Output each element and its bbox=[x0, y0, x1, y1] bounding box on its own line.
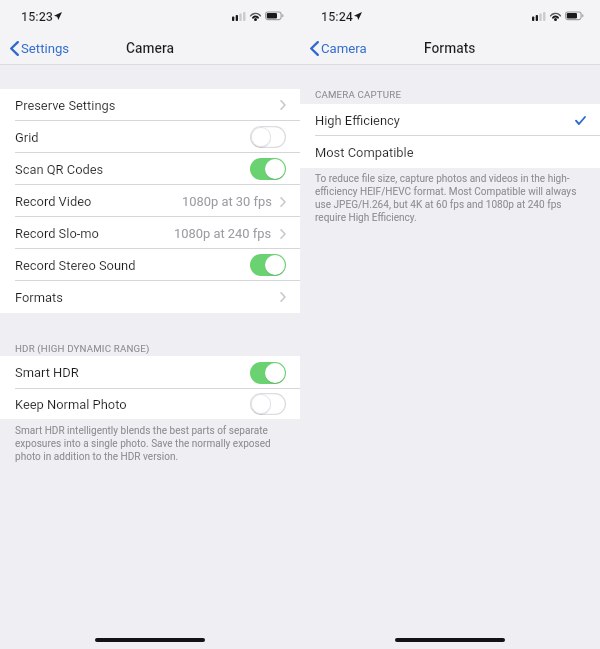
staticText: Preserve Settings bbox=[15, 98, 116, 113]
button[interactable]: High Efficiency bbox=[300, 104, 600, 136]
button[interactable]: Keep Normal Photo bbox=[250, 393, 286, 415]
button[interactable]: Record Stereo Sound bbox=[250, 254, 286, 276]
button[interactable]: Record Stereo Sound bbox=[0, 249, 300, 281]
button[interactable]: Grid bbox=[250, 126, 286, 148]
staticText: Record Stereo Sound bbox=[15, 258, 136, 273]
staticText: HDR (HIGH DYNAMIC RANGE) bbox=[15, 343, 150, 354]
staticText: Grid bbox=[15, 130, 39, 145]
button[interactable]: Smart HDR bbox=[250, 362, 286, 384]
staticText: Formats bbox=[424, 40, 476, 56]
button[interactable]: Formats bbox=[0, 281, 300, 313]
staticText: Keep Normal Photo bbox=[15, 397, 127, 412]
staticText: Record Video bbox=[15, 194, 92, 209]
staticText: Smart HDR intelligently blends the best … bbox=[15, 425, 281, 463]
button[interactable]: Camera bbox=[306, 38, 375, 59]
button[interactable]: Keep Normal Photo bbox=[0, 389, 300, 419]
staticText: Camera bbox=[126, 40, 175, 56]
staticText: Scan QR Codes bbox=[15, 162, 104, 177]
button[interactable]: Record Slo-mo bbox=[0, 217, 300, 249]
staticText: 15:24 bbox=[321, 9, 353, 24]
button[interactable]: Scan QR Codes bbox=[0, 153, 300, 185]
staticText: Smart HDR bbox=[15, 365, 79, 380]
button[interactable]: Scan QR Codes bbox=[250, 158, 286, 180]
staticText: Settings bbox=[21, 41, 70, 56]
staticText: Formats bbox=[15, 290, 63, 305]
staticText: CAMERA CAPTURE bbox=[315, 89, 402, 100]
staticText: Record Slo-mo bbox=[15, 226, 99, 241]
button[interactable]: Grid bbox=[0, 121, 300, 153]
staticText: 1080p at 30 fps bbox=[182, 194, 272, 209]
staticText: 1080p at 240 fps bbox=[174, 226, 272, 241]
staticText: 15:23 bbox=[21, 9, 53, 24]
staticText: Most Compatible bbox=[315, 145, 414, 160]
staticText: Camera bbox=[321, 41, 367, 56]
button[interactable]: Record Video bbox=[0, 185, 300, 217]
other: Selected bbox=[575, 116, 586, 125]
button[interactable]: Preserve Settings bbox=[0, 89, 300, 121]
button[interactable]: Settings bbox=[6, 38, 78, 59]
staticText: High Efficiency bbox=[315, 113, 400, 128]
button[interactable]: Smart HDR bbox=[0, 356, 300, 389]
button[interactable]: Most Compatible bbox=[300, 136, 600, 168]
staticText: To reduce file size, capture photos and … bbox=[315, 173, 581, 224]
